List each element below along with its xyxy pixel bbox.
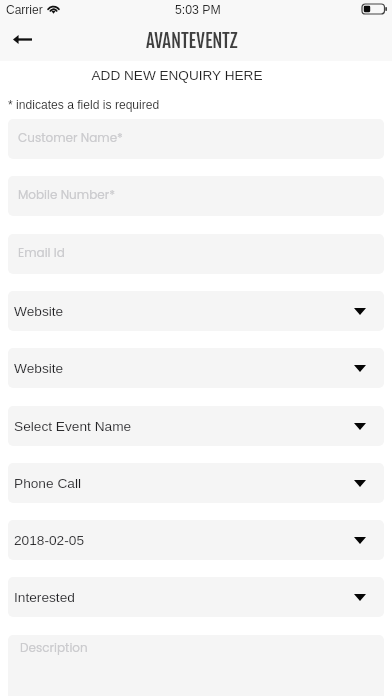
staticText: AVANTEVENTZ bbox=[146, 29, 238, 52]
button[interactable]: Website bbox=[8, 291, 384, 331]
staticText: Customer Name* bbox=[18, 129, 123, 146]
button[interactable]: 2018-02-05 bbox=[8, 520, 384, 560]
staticText: Carrier bbox=[6, 3, 43, 16]
button[interactable]: Select Event Name bbox=[8, 406, 384, 446]
button[interactable]: Interested bbox=[8, 577, 384, 617]
staticText: * indicates a field is required bbox=[8, 98, 160, 112]
button[interactable]: Website bbox=[8, 348, 384, 388]
button[interactable]: Email Id bbox=[8, 234, 384, 274]
staticText: ADD NEW ENQUIRY HERE bbox=[0, 68, 354, 83]
button[interactable]: Description bbox=[8, 635, 384, 696]
button[interactable]: Mobile Number* bbox=[8, 176, 384, 216]
button[interactable]: Customer Name* bbox=[8, 119, 384, 159]
staticText: Email Id bbox=[18, 244, 65, 261]
staticText: Phone Call bbox=[14, 476, 81, 491]
staticText: 5:03 PM bbox=[175, 3, 221, 17]
staticText: Mobile Number* bbox=[18, 186, 116, 203]
button[interactable]: Phone Call bbox=[8, 463, 384, 503]
staticText: Select Event Name bbox=[14, 419, 132, 434]
staticText: Website bbox=[14, 361, 64, 376]
staticText: 2018-02-05 bbox=[14, 533, 85, 548]
staticText: Interested bbox=[14, 590, 75, 605]
staticText: Description bbox=[20, 639, 88, 656]
button[interactable]: Back bbox=[0, 22, 46, 61]
staticText: Website bbox=[14, 304, 64, 319]
